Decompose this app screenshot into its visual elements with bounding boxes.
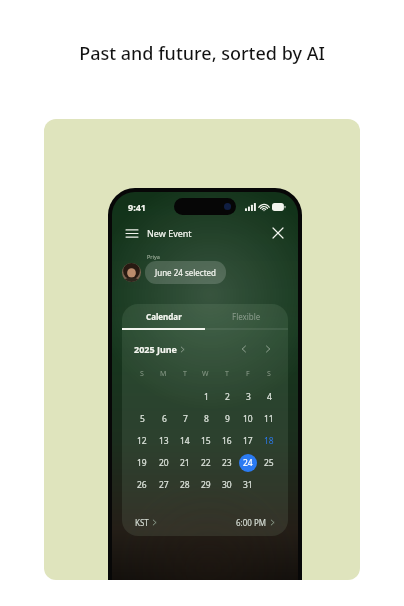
staticText: W — [202, 369, 209, 379]
staticText: 6:00 PM — [236, 517, 267, 528]
button[interactable]: 8 — [197, 410, 215, 428]
button[interactable]: 6 — [155, 410, 173, 428]
button[interactable]: 30 — [218, 476, 236, 494]
button[interactable]: 7 — [176, 410, 194, 428]
staticText: 14 — [180, 435, 190, 447]
button[interactable]: 24 — [239, 454, 257, 472]
staticText: 28 — [180, 479, 190, 491]
button[interactable]: Previous month — [236, 341, 252, 357]
button[interactable]: 17 — [239, 432, 257, 450]
button[interactable]: 1 — [197, 388, 215, 406]
staticText: 29 — [201, 479, 211, 491]
button[interactable]: Next month — [260, 341, 276, 357]
staticText: T — [183, 369, 187, 379]
staticText: 1 — [204, 391, 209, 403]
button[interactable]: 14 — [176, 432, 194, 450]
button[interactable]: 16 — [218, 432, 236, 450]
button[interactable]: Flexible — [205, 304, 288, 328]
button[interactable]: 6:00 PM — [236, 517, 275, 528]
staticText: 30 — [222, 479, 232, 491]
staticText: 6 — [162, 413, 167, 425]
staticText: 31 — [243, 479, 253, 491]
staticText: F — [246, 369, 250, 379]
button[interactable]: 29 — [197, 476, 215, 494]
staticText: T — [225, 369, 229, 379]
staticText: 24 — [243, 457, 253, 469]
button[interactable]: 23 — [218, 454, 236, 472]
staticText: 21 — [180, 457, 190, 469]
staticText: 4 — [267, 391, 272, 403]
staticText: 11 — [264, 413, 274, 425]
button[interactable]: 20 — [155, 454, 173, 472]
staticText: 12 — [137, 435, 147, 447]
staticText: Past and future, sorted by AI — [79, 41, 325, 66]
button[interactable]: 9 — [218, 410, 236, 428]
button[interactable]: 2025 June — [134, 343, 185, 355]
staticText: 19 — [137, 457, 147, 469]
button[interactable]: 21 — [176, 454, 194, 472]
staticText: 25 — [264, 457, 274, 469]
staticText: 9:41 — [128, 201, 146, 213]
staticText: 8 — [204, 413, 209, 425]
button[interactable]: 28 — [176, 476, 194, 494]
staticText: 13 — [159, 435, 169, 447]
staticText: 27 — [159, 479, 169, 491]
button[interactable]: Menu — [123, 224, 141, 242]
staticText: S — [140, 369, 144, 379]
staticText: KST — [135, 517, 149, 528]
button[interactable]: 26 — [133, 476, 151, 494]
staticText: 18 — [264, 435, 274, 447]
button[interactable]: 27 — [155, 476, 173, 494]
button[interactable]: Calendar — [122, 304, 205, 328]
button[interactable]: 4 — [260, 388, 278, 406]
staticText: 3 — [246, 391, 251, 403]
staticText: S — [267, 369, 271, 379]
button[interactable]: 13 — [155, 432, 173, 450]
button[interactable]: 19 — [133, 454, 151, 472]
button[interactable]: June 24 selected — [145, 261, 226, 284]
button[interactable]: KST — [135, 517, 157, 528]
staticText: 26 — [137, 479, 147, 491]
staticText: Priya — [147, 253, 160, 260]
staticText: Calendar — [146, 311, 182, 322]
staticText: 22 — [201, 457, 211, 469]
button[interactable]: 10 — [239, 410, 257, 428]
button[interactable]: 25 — [260, 454, 278, 472]
staticText: Flexible — [232, 311, 261, 322]
staticText: 23 — [222, 457, 232, 469]
staticText: June 24 selected — [155, 267, 216, 278]
staticText: 2025 June — [134, 343, 177, 355]
button[interactable]: Close — [269, 224, 287, 242]
button[interactable]: 15 — [197, 432, 215, 450]
button[interactable]: 3 — [239, 388, 257, 406]
button[interactable]: 5 — [133, 410, 151, 428]
button[interactable]: 2 — [218, 388, 236, 406]
staticText: 17 — [243, 435, 253, 447]
staticText: New Event — [147, 227, 192, 239]
staticText: 10 — [243, 413, 253, 425]
staticText: 2 — [225, 391, 230, 403]
staticText: 20 — [159, 457, 169, 469]
staticText: 9 — [225, 413, 230, 425]
button[interactable]: 31 — [239, 476, 257, 494]
staticText: 7 — [183, 413, 188, 425]
staticText: 16 — [222, 435, 232, 447]
staticText: 5 — [140, 413, 145, 425]
staticText: M — [160, 369, 167, 379]
button[interactable]: 22 — [197, 454, 215, 472]
staticText: 15 — [201, 435, 211, 447]
button[interactable]: 12 — [133, 432, 151, 450]
button[interactable]: 18 — [260, 432, 278, 450]
button[interactable]: 11 — [260, 410, 278, 428]
